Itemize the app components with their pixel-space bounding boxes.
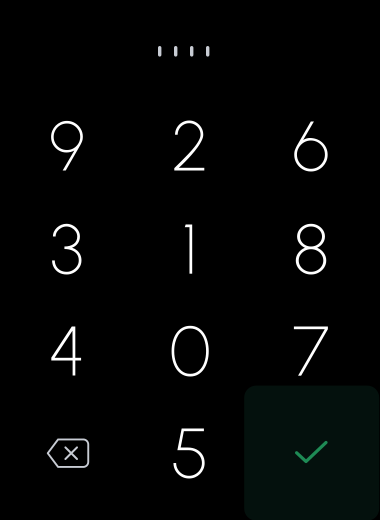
staticText: 6 [292,104,329,188]
staticText: 7 [292,309,329,393]
staticText: 3 [50,207,84,291]
button[interactable]: 4 [11,305,123,397]
staticText: 8 [293,207,329,291]
button[interactable]: 1 [134,203,246,295]
button[interactable]: Delete [11,407,123,499]
button[interactable]: 0 [134,305,246,397]
button[interactable]: 9 [11,100,123,192]
staticText: 1 [182,207,198,291]
button[interactable]: Confirm [244,386,379,520]
staticText: 0 [169,309,210,393]
button[interactable]: 8 [255,203,367,295]
button[interactable]: 2 [134,100,246,192]
staticText: 5 [171,411,209,495]
staticText: 2 [171,104,208,188]
button[interactable]: 3 [11,203,123,295]
staticText: 9 [49,104,85,188]
button[interactable]: 5 [134,407,246,499]
button[interactable]: 6 [255,100,367,192]
staticText: 4 [48,309,85,393]
button[interactable]: 7 [255,305,367,397]
